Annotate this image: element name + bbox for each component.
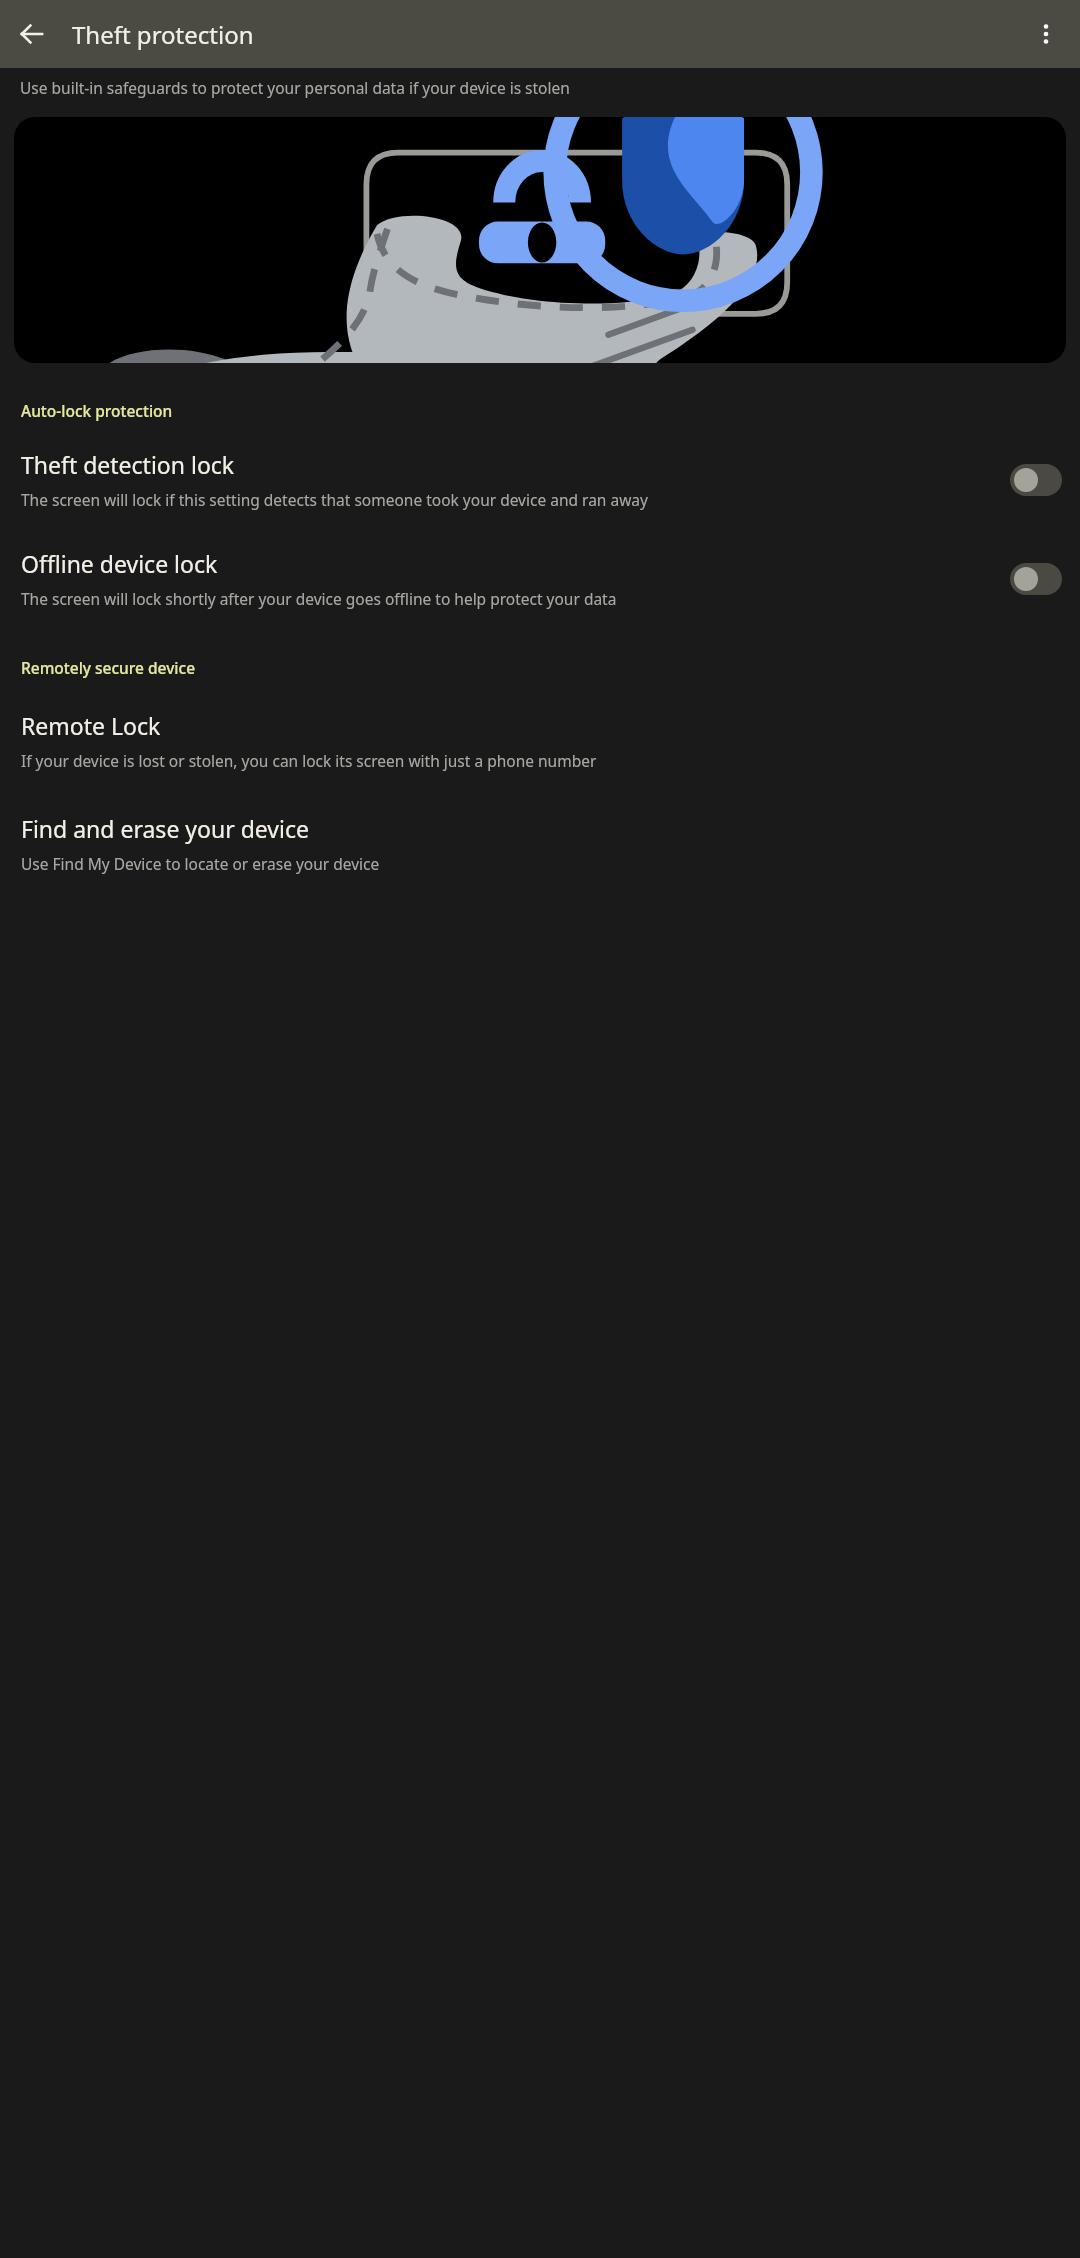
button[interactable]: Remote Lock — [0, 710, 1080, 771]
staticText: Theft detection lock — [21, 449, 235, 480]
button[interactable]: Find and erase your device — [0, 813, 1080, 874]
button[interactable]: Theft detection lock — [0, 449, 1080, 510]
staticText: If your device is lost or stolen, you ca… — [21, 750, 597, 771]
staticText: The screen will lock if this setting det… — [21, 489, 648, 510]
staticText: Theft protection — [72, 18, 254, 51]
button[interactable]: More options — [1022, 10, 1070, 58]
button[interactable]: Back — [8, 10, 56, 58]
staticText: Offline device lock — [21, 548, 218, 579]
staticText: Use Find My Device to locate or erase yo… — [21, 853, 380, 874]
staticText: Remote Lock — [21, 710, 161, 741]
staticText: Remotely secure device — [21, 657, 196, 678]
staticText: Auto-lock protection — [21, 400, 173, 421]
staticText: Find and erase your device — [21, 813, 309, 844]
staticText: The screen will lock shortly after your … — [21, 588, 617, 609]
button[interactable]: Theft detection lock toggle — [1010, 464, 1062, 496]
button[interactable]: Offline device lock — [0, 548, 1080, 609]
button[interactable]: Offline device lock toggle — [1010, 563, 1062, 595]
staticText: Use built-in safeguards to protect your … — [20, 77, 570, 98]
